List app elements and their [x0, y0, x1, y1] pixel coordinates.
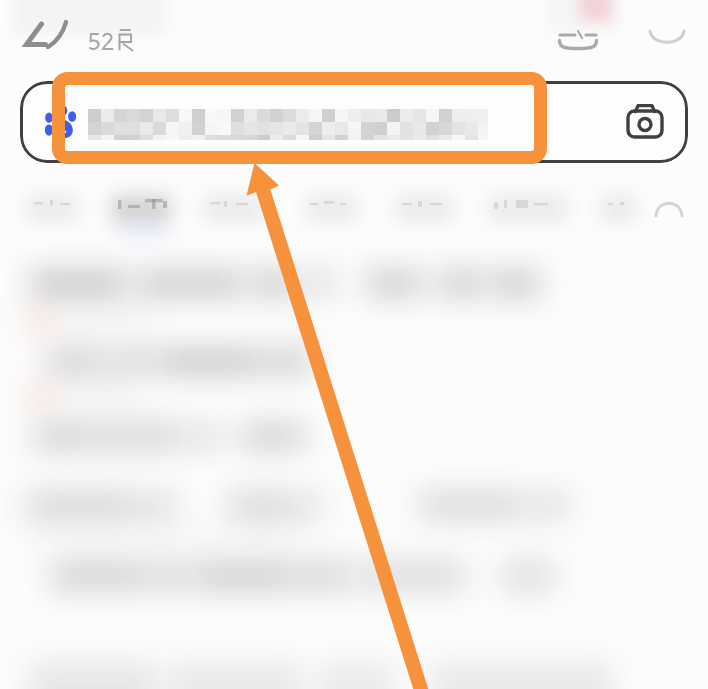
- button[interactable]: Camera search: [20, 81, 688, 163]
- button[interactable]: Profile: [640, 0, 700, 56]
- button[interactable]: Messages: [548, 0, 612, 56]
- button[interactable]: Camera search: [621, 98, 669, 146]
